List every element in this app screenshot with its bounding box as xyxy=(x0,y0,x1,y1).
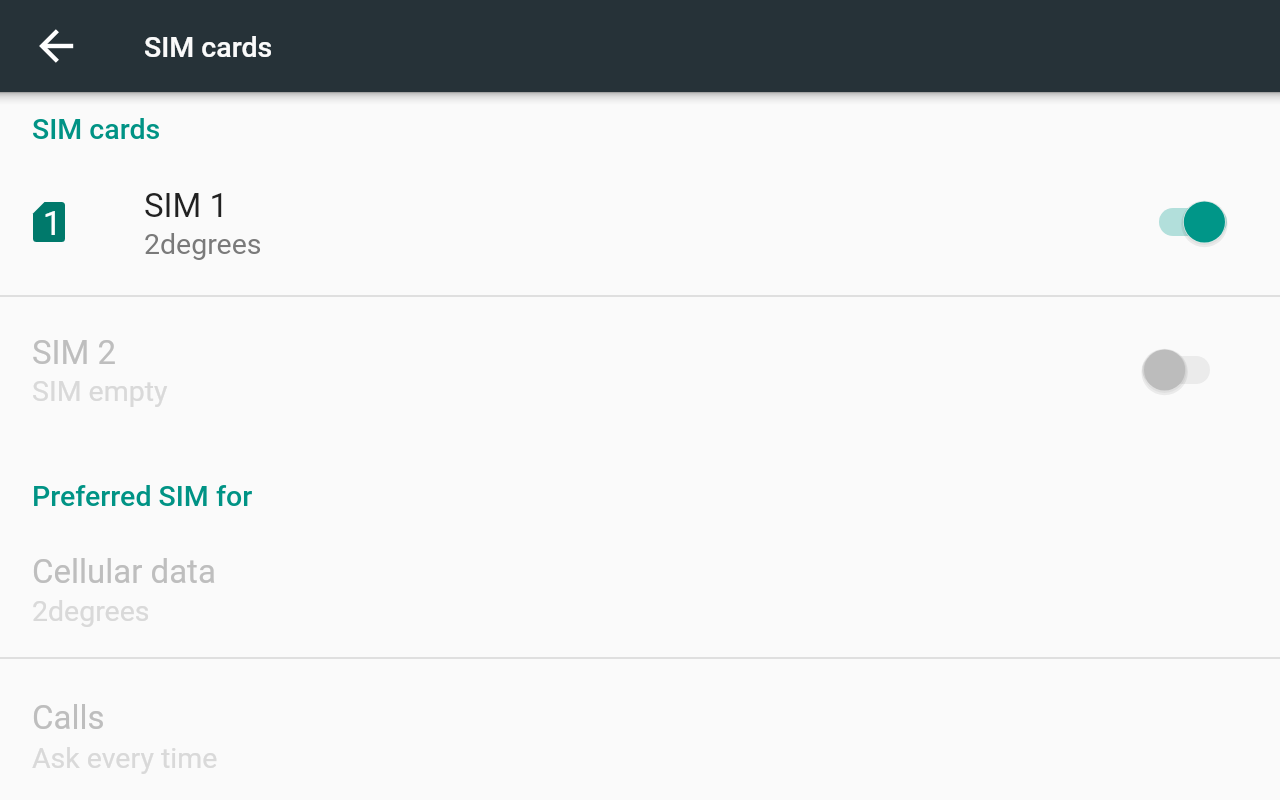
staticText: Calls xyxy=(32,698,105,737)
staticText: SIM cards xyxy=(144,31,273,64)
staticText: 2degrees xyxy=(144,228,262,261)
staticText: 1 xyxy=(43,204,62,243)
staticText: Ask every time xyxy=(32,742,218,775)
staticText: 2degrees xyxy=(32,595,150,628)
button[interactable]: SIM 2 xyxy=(0,296,1280,442)
staticText: SIM cards xyxy=(32,113,161,146)
button[interactable]: SIM 1 on xyxy=(1147,186,1240,258)
button[interactable]: Navigate up xyxy=(32,21,82,71)
button[interactable]: Cellular data xyxy=(0,514,1280,657)
staticText: SIM 2 xyxy=(32,333,117,372)
button[interactable]: SIM 1 xyxy=(0,149,1280,295)
staticText: Preferred SIM for xyxy=(32,480,253,513)
button[interactable]: Calls xyxy=(0,658,1280,800)
staticText: SIM empty xyxy=(32,375,168,408)
button[interactable]: SIM 2 off xyxy=(1130,334,1223,406)
staticText: Cellular data xyxy=(32,552,216,591)
staticText: SIM 1 xyxy=(144,186,229,225)
